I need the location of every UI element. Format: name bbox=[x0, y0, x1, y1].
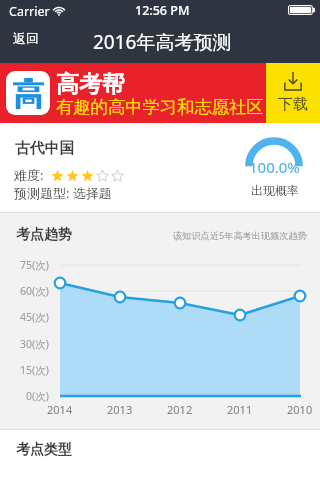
staticText: 45(次) bbox=[20, 310, 49, 324]
staticText: 60(次) bbox=[20, 284, 49, 298]
staticText: 2016年高考预测 bbox=[93, 29, 232, 55]
staticText: 该知识点近5年高考出现频次趋势 bbox=[173, 229, 307, 242]
staticText: 2012 bbox=[167, 402, 193, 416]
staticText: 难度: bbox=[14, 166, 44, 184]
button[interactable]: 考点类型 bbox=[0, 430, 320, 480]
button[interactable] bbox=[0, 63, 266, 123]
staticText: 2013 bbox=[107, 402, 133, 416]
staticText: 考点趋势 bbox=[16, 226, 72, 244]
staticText: 15(次) bbox=[20, 363, 49, 377]
staticText: 考点类型 bbox=[16, 441, 72, 459]
staticText: 下载 bbox=[278, 95, 308, 114]
button[interactable]: 返回 bbox=[4, 27, 48, 49]
staticText: 高考帮 bbox=[56, 70, 125, 99]
button[interactable]: Download bbox=[266, 63, 320, 123]
staticText: 古代中国 bbox=[15, 139, 75, 158]
staticText: 30(次) bbox=[20, 337, 49, 351]
staticText: Carrier bbox=[9, 3, 50, 20]
staticText: 预测题型: 选择题 bbox=[14, 184, 112, 202]
staticText: 有趣的高中学习和志愿社区 bbox=[56, 96, 264, 118]
staticText: 12:56 PM bbox=[135, 2, 190, 19]
staticText: 75(次) bbox=[20, 258, 49, 272]
staticText: 100.0% bbox=[249, 157, 300, 175]
staticText: 2010 bbox=[287, 402, 313, 416]
staticText: 0(次) bbox=[26, 389, 49, 403]
staticText: 2014 bbox=[47, 402, 73, 416]
staticText: 2011 bbox=[227, 402, 253, 416]
staticText: 出现概率 bbox=[251, 183, 299, 198]
staticText: 返回 bbox=[13, 30, 39, 46]
